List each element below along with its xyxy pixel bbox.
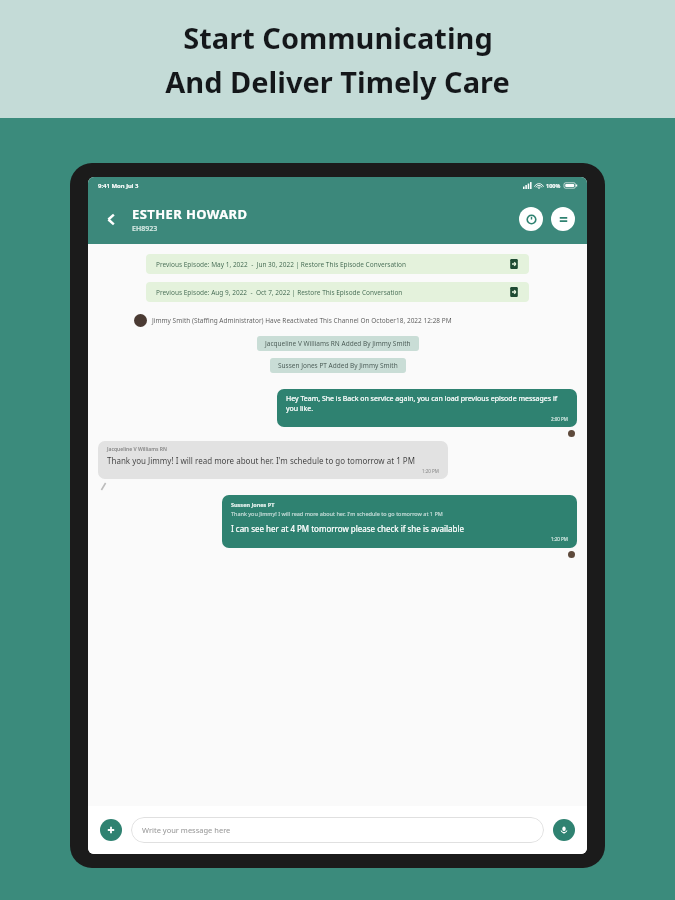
staticText: 2:00 PM <box>551 416 568 422</box>
button[interactable]: Back <box>96 204 126 234</box>
button[interactable]: Menu <box>551 207 575 231</box>
staticText: Start Communicating <box>183 18 493 57</box>
staticText: Sussen Jones PT <box>231 501 275 508</box>
button[interactable]: Add attachment <box>100 819 122 841</box>
button[interactable]: Hey Team, She is Back on service again, … <box>277 389 577 427</box>
staticText: Thank you Jimmy! I will read more about … <box>107 455 415 466</box>
staticText: Previous Episode: May 1, 2022 - Jun 30, … <box>156 260 509 269</box>
staticText: EH8923 <box>132 224 158 234</box>
staticText: 9:41 Mon Jul 3 <box>98 182 139 190</box>
button[interactable]: Record voice message <box>553 819 575 841</box>
button[interactable]: Jacqueline V Williams RN Added By Jimmy … <box>257 336 419 351</box>
button[interactable]: Write your message here <box>131 817 544 843</box>
staticText: Thank you Jimmy! I will read more about … <box>231 510 443 517</box>
staticText: Hey Team, She is Back on service again, … <box>286 394 568 414</box>
staticText: I can see her at 4 PM tomorrow please ch… <box>231 523 465 534</box>
button[interactable]: Sussen Jones PT Added By Jimmy Smith <box>270 358 406 373</box>
staticText: Jacqueline V Williams RN Added By Jimmy … <box>265 339 411 348</box>
staticText: 100% <box>546 182 561 189</box>
staticText: 1:20 PM <box>422 468 439 474</box>
staticText: Jimmy Smith (Staffing Administrator) Hav… <box>152 316 452 325</box>
button[interactable]: Previous Episode: Aug 9, 2022 - Oct 7, 2… <box>146 282 529 302</box>
staticText: ESTHER HOWARD <box>132 205 248 223</box>
staticText: Previous Episode: Aug 9, 2022 - Oct 7, 2… <box>156 288 509 297</box>
staticText: Jacqueline V Williams RN <box>107 446 168 453</box>
button[interactable]: Sussen Jones PT <box>222 495 577 548</box>
staticText: Write your message here <box>142 825 231 835</box>
button[interactable]: Jacqueline V Williams RN <box>98 441 448 479</box>
staticText: 1:20 PM <box>551 536 568 542</box>
button[interactable]: Jimmy Smith (Staffing Administrator) Hav… <box>98 314 577 327</box>
button[interactable]: Previous Episode: May 1, 2022 - Jun 30, … <box>146 254 529 274</box>
staticText: And Deliver Timely Care <box>165 62 510 101</box>
staticText: Sussen Jones PT Added By Jimmy Smith <box>278 361 398 370</box>
button[interactable]: Call <box>519 207 543 231</box>
button[interactable]: ESTHER HOWARD <box>132 205 248 234</box>
